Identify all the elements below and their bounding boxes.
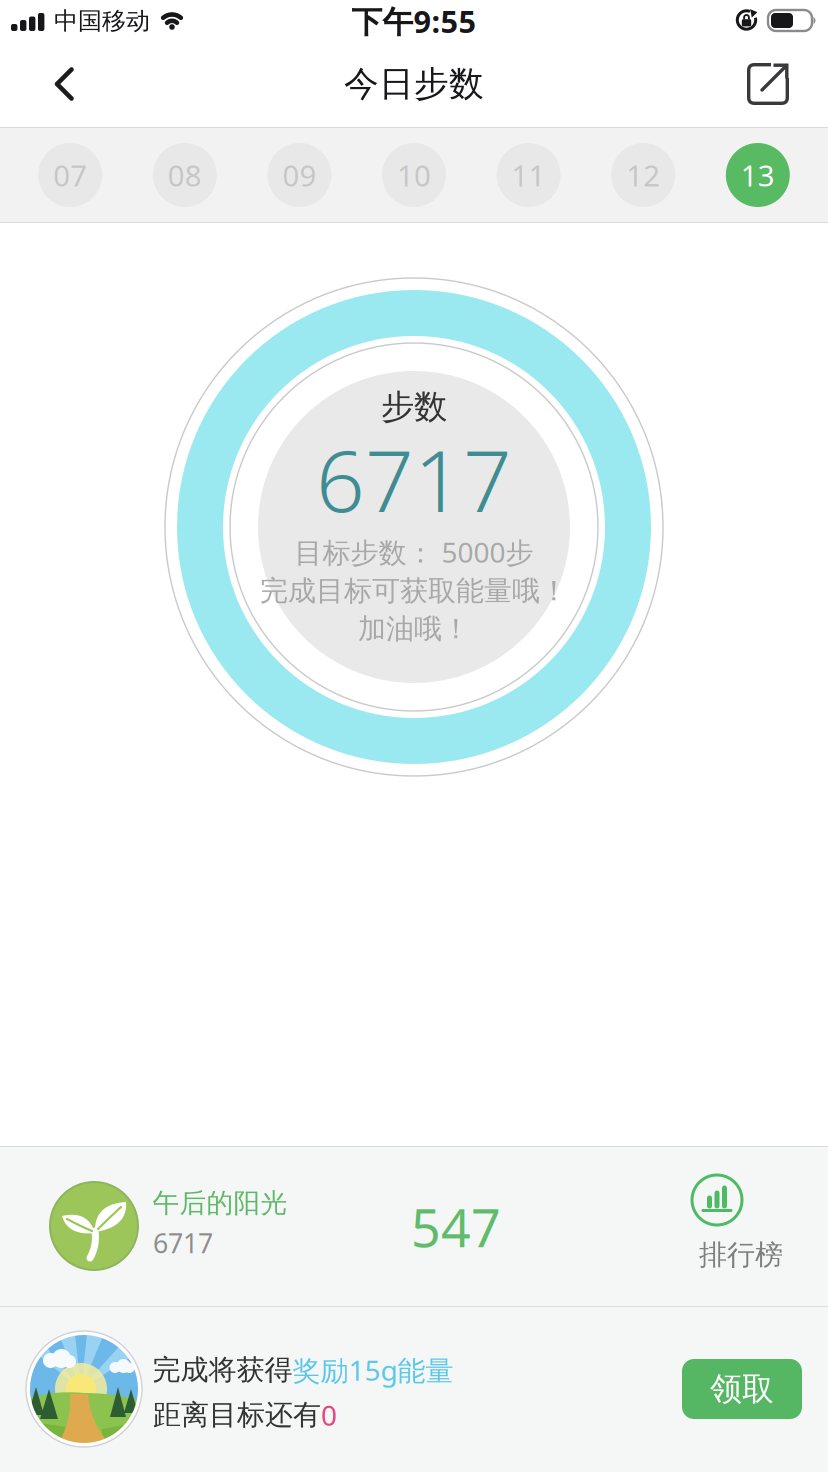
- staticText: 07: [53, 155, 87, 194]
- button[interactable]: Share: [732, 48, 804, 120]
- staticText: 午后的阳光: [152, 1187, 287, 1219]
- staticText: 步数: [381, 386, 447, 427]
- staticText: 加油哦！: [358, 612, 470, 646]
- staticText: 6717: [316, 422, 512, 536]
- staticText: 12: [626, 155, 660, 194]
- staticText: 排行榜: [699, 1238, 783, 1272]
- button[interactable]: 领取: [682, 1359, 802, 1419]
- staticText: 0: [321, 1396, 337, 1434]
- button[interactable]: 10: [382, 143, 446, 207]
- staticText: 完成将获得: [152, 1353, 292, 1387]
- staticText: 距离目标还有: [153, 1398, 321, 1432]
- staticText: 11: [512, 155, 546, 194]
- button[interactable]: 07: [38, 143, 102, 207]
- staticText: 6717: [153, 1225, 213, 1261]
- button[interactable]: 13: [726, 143, 790, 207]
- button[interactable]: Back: [28, 48, 100, 120]
- staticText: 09: [282, 155, 316, 194]
- staticText: 目标步数： 5000步: [294, 533, 533, 571]
- button[interactable]: 09: [267, 143, 331, 207]
- staticText: 领取: [710, 1369, 774, 1409]
- staticText: 中国移动: [54, 6, 150, 36]
- button[interactable]: 11: [497, 143, 561, 207]
- staticText: 完成目标可获取能量哦！: [260, 574, 568, 608]
- staticText: 下午9:55: [351, 1, 476, 41]
- button[interactable]: 12: [611, 143, 675, 207]
- staticText: 今日步数: [344, 63, 484, 105]
- button[interactable]: 08: [153, 143, 217, 207]
- staticText: 13: [741, 155, 775, 194]
- staticText: 10: [397, 155, 431, 194]
- staticText: 奖励15g能量: [292, 1351, 453, 1389]
- staticText: 08: [168, 155, 202, 194]
- staticText: 547: [411, 1192, 501, 1262]
- button[interactable]: 排行榜: [671, 1166, 811, 1282]
